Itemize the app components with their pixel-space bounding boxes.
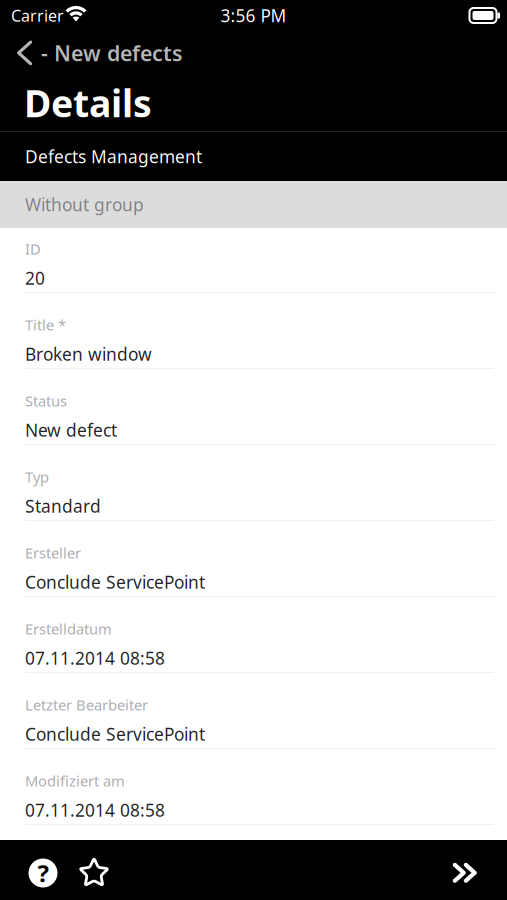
- button[interactable]: Erstelldatum: [0, 597, 507, 673]
- staticText: Carrier: [11, 5, 64, 26]
- staticText: 3:56 PM: [220, 4, 286, 27]
- button[interactable]: Letzter Bearbeiter: [0, 673, 507, 749]
- staticText: New defect: [25, 418, 117, 441]
- staticText: Modifiziert am: [25, 771, 125, 790]
- button[interactable]: Ersteller: [0, 521, 507, 597]
- staticText: Title *: [25, 315, 66, 334]
- staticText: Status: [25, 391, 67, 410]
- staticText: Without group: [25, 193, 144, 216]
- button[interactable]: Modifiziert am: [0, 749, 507, 825]
- staticText: Letzter Bearbeiter: [25, 695, 148, 714]
- button[interactable]: Defects Management: [0, 132, 507, 181]
- staticText: Standard: [25, 494, 101, 517]
- button[interactable]: - New defects: [0, 31, 507, 73]
- staticText: Broken window: [25, 342, 152, 365]
- button[interactable]: Favorite: [72, 840, 116, 900]
- staticText: Details: [24, 78, 152, 128]
- staticText: Typ: [25, 467, 49, 486]
- staticText: Erstelldatum: [25, 619, 112, 638]
- staticText: ID: [25, 239, 41, 258]
- staticText: Ersteller: [25, 543, 81, 562]
- staticText: ?: [37, 857, 48, 889]
- staticText: 07.11.2014 08:58: [25, 646, 165, 669]
- staticText: Defects Management: [25, 145, 202, 168]
- button[interactable]: ID: [0, 228, 507, 293]
- staticText: Conclude ServicePoint: [25, 570, 205, 593]
- staticText: 07.11.2014 08:58: [25, 798, 165, 821]
- button[interactable]: Title *: [0, 293, 507, 369]
- staticText: - New defects: [41, 39, 183, 67]
- button[interactable]: Status: [0, 369, 507, 445]
- button[interactable]: Next: [433, 840, 497, 900]
- button[interactable]: Help: [14, 840, 72, 900]
- button[interactable]: Typ: [0, 445, 507, 521]
- staticText: 20: [25, 266, 45, 289]
- staticText: Conclude ServicePoint: [25, 722, 205, 745]
